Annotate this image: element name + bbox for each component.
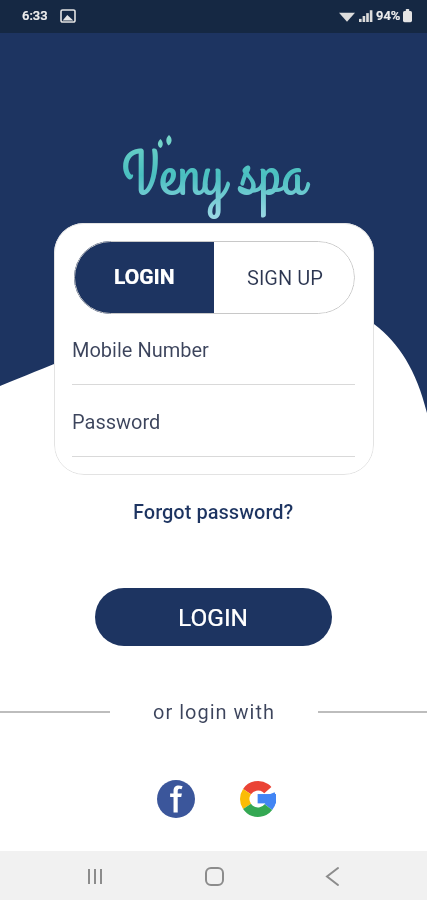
staticText: Veny spa — [122, 132, 305, 219]
button[interactable]: Forgot password? — [125, 497, 302, 526]
button[interactable]: LOGIN — [74, 241, 214, 314]
button[interactable]: Login with Facebook — [157, 780, 195, 818]
staticText: Forgot password? — [133, 500, 294, 523]
button[interactable]: SIGN UP — [214, 241, 355, 314]
staticText: or login with — [153, 700, 275, 723]
button[interactable]: Back — [308, 852, 356, 900]
staticText: SIGN UP — [247, 266, 323, 289]
button[interactable]: Home — [190, 852, 238, 900]
button[interactable]: Recent apps — [71, 852, 119, 900]
staticText: LOGIN — [114, 265, 175, 290]
button[interactable]: Password — [72, 410, 355, 457]
button[interactable]: LOGIN — [95, 588, 332, 646]
staticText: Password — [72, 410, 161, 433]
staticText: 6:33 — [22, 8, 48, 23]
button[interactable]: Mobile Number — [72, 338, 355, 385]
staticText: 94% — [376, 8, 401, 23]
button[interactable]: Login with Google — [239, 780, 277, 818]
staticText: Mobile Number — [72, 338, 209, 361]
staticText: LOGIN — [178, 603, 249, 632]
